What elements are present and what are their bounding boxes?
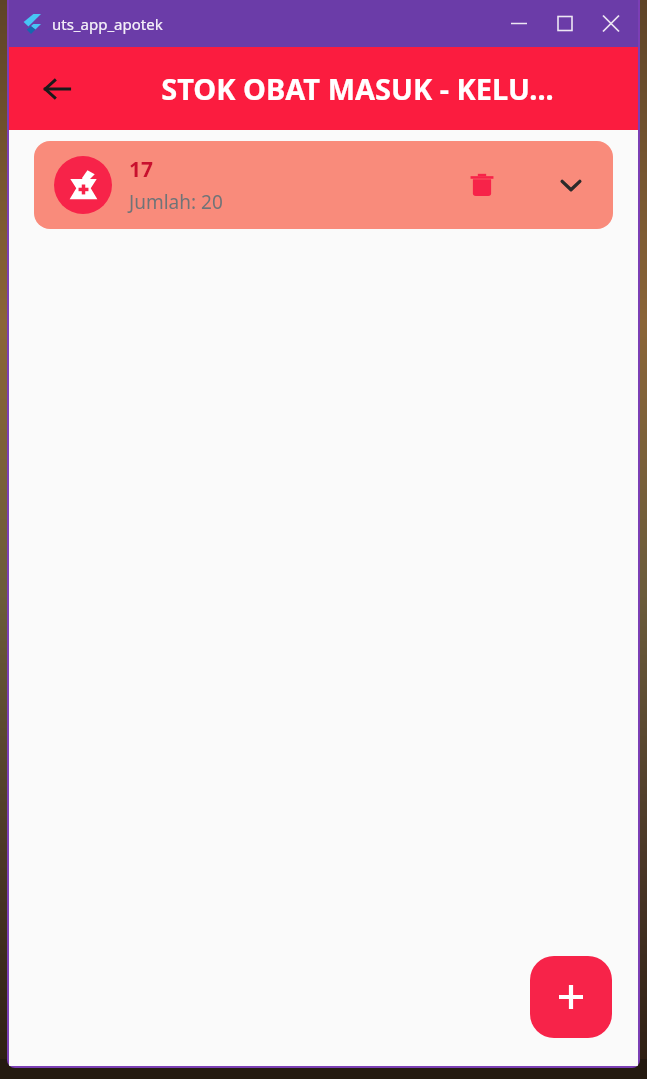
button[interactable]: Close — [588, 0, 634, 47]
staticText: 17 — [129, 155, 154, 184]
staticText: STOK OBAT MASUK - KELU... — [161, 69, 554, 108]
button[interactable]: Add — [530, 956, 612, 1038]
button[interactable]: Delete — [459, 162, 505, 208]
staticText: uts_app_apotek — [52, 14, 163, 34]
button[interactable]: 17 — [34, 141, 613, 229]
staticText: Jumlah: 20 — [129, 189, 223, 215]
button[interactable]: Back — [31, 63, 83, 115]
button[interactable]: Maximize — [542, 0, 588, 47]
button[interactable]: Expand — [549, 163, 593, 207]
button[interactable]: Minimize — [496, 0, 542, 47]
